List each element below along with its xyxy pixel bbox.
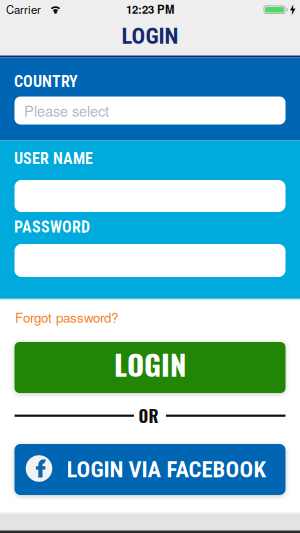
staticText: OR [138, 403, 158, 428]
staticText: USER NAME [14, 149, 93, 168]
button[interactable] [14, 180, 285, 212]
staticText: Please select [24, 100, 109, 121]
button[interactable]: LOGIN [14, 342, 285, 393]
staticText: PASSWORD [14, 218, 90, 236]
staticText: LOGIN [114, 342, 186, 385]
button[interactable]: LOGIN VIA FACEBOOK [14, 444, 285, 495]
button[interactable] [14, 244, 285, 277]
staticText: Carrier [6, 1, 41, 17]
staticText: COUNTRY [14, 72, 78, 91]
button[interactable]: Please select [14, 96, 285, 124]
staticText: Forgot password? [15, 307, 118, 327]
staticText: 12:23 PM [126, 1, 174, 17]
staticText: LOGIN [121, 23, 178, 49]
staticText: LOGIN VIA FACEBOOK [66, 456, 266, 483]
button[interactable]: Forgot password? [15, 307, 285, 327]
